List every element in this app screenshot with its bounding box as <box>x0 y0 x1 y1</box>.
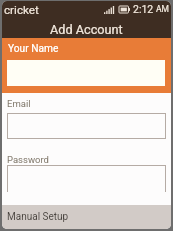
staticText: Manual Setup <box>7 211 69 223</box>
staticText: Password <box>7 154 49 165</box>
button[interactable] <box>7 165 166 192</box>
staticText: 2:12 <box>133 3 154 15</box>
staticText: Add Account <box>50 22 123 37</box>
staticText: Email <box>7 98 31 109</box>
staticText: AM <box>156 4 169 14</box>
staticText: cricket <box>4 3 39 17</box>
button[interactable] <box>7 113 166 139</box>
staticText: Your Name <box>8 43 59 55</box>
button[interactable]: Manual Setup <box>2 205 171 229</box>
